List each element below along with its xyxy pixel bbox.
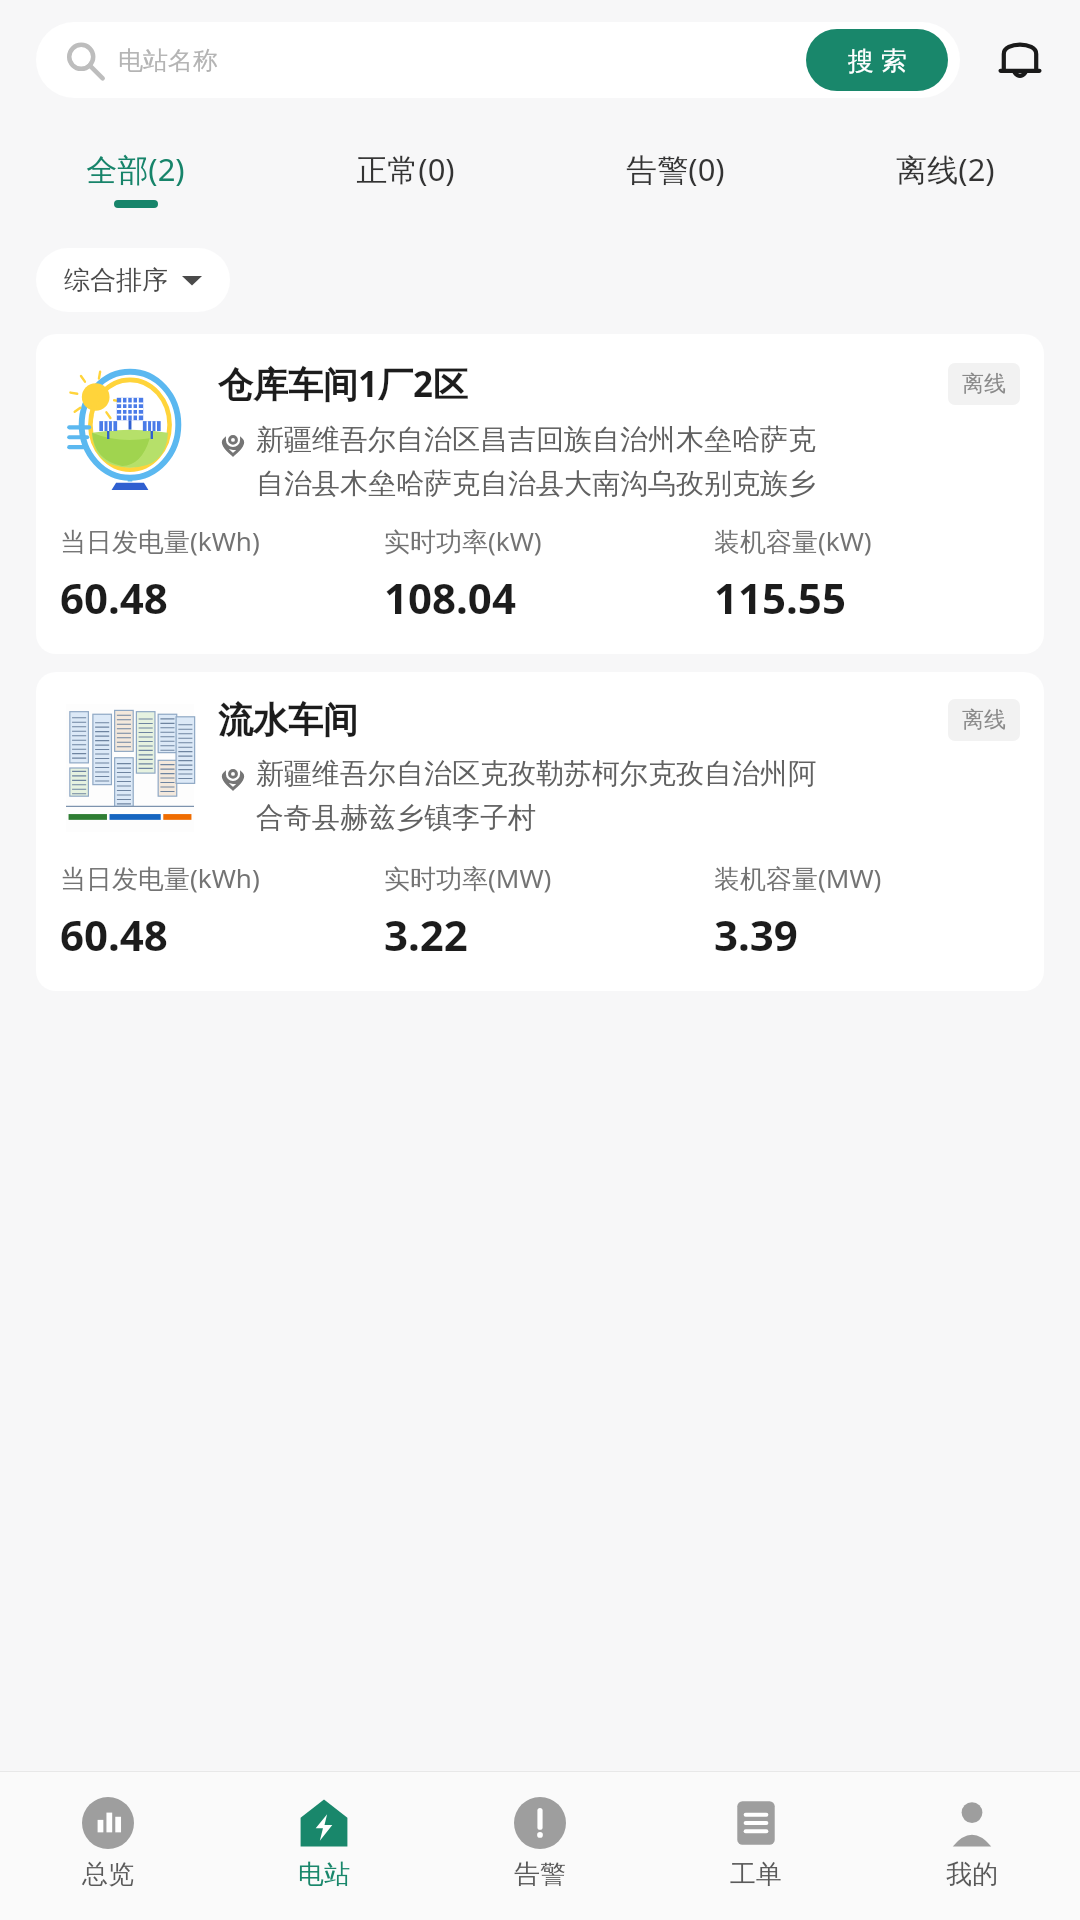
button[interactable]: 全部(2) — [0, 130, 270, 226]
staticText: 当日发电量(kWh) — [60, 523, 260, 559]
staticText: 总览 — [82, 1858, 134, 1891]
staticText: 60.48 — [60, 906, 168, 963]
staticText: 离线 — [962, 706, 1006, 734]
staticText: 实时功率(MW) — [384, 860, 552, 896]
staticText: 实时功率(kW) — [384, 523, 542, 559]
button[interactable]: 综合排序 — [36, 248, 230, 312]
button[interactable]: 电站 — [216, 1772, 432, 1920]
staticText: 离线 — [962, 370, 1006, 398]
staticText: 工单 — [730, 1858, 782, 1891]
button[interactable]: 我的 — [864, 1772, 1080, 1920]
button[interactable]: 离线(2) — [810, 130, 1080, 226]
staticText: 装机容量(MW) — [714, 860, 882, 896]
button[interactable]: 仓库车间1厂2区 — [36, 334, 1044, 654]
staticText: 仓库车间1厂2区 — [218, 360, 469, 408]
staticText: 电站 — [298, 1858, 350, 1891]
button[interactable]: 搜 索 — [806, 29, 948, 91]
button[interactable]: 流水车间 — [36, 672, 1044, 991]
staticText: 我的 — [946, 1858, 998, 1891]
staticText: 流水车间 — [218, 698, 358, 742]
button[interactable]: 电站名称 — [36, 22, 960, 98]
staticText: 新疆维吾尔自治区昌吉回族自治州木垒哈萨克 自治县木垒哈萨克自治县大南沟乌孜别克族… — [256, 422, 816, 501]
staticText: 115.55 — [714, 569, 846, 626]
button[interactable]: 正常(0) — [270, 130, 540, 226]
staticText: 60.48 — [60, 569, 168, 626]
staticText: 3.22 — [384, 906, 468, 963]
staticText: 告警 — [514, 1858, 566, 1891]
button[interactable]: 告警(0) — [540, 130, 810, 226]
staticText: 当日发电量(kWh) — [60, 860, 260, 896]
button[interactable]: Notifications — [982, 22, 1058, 98]
staticText: 告警(0) — [626, 148, 725, 190]
button[interactable]: 告警 — [432, 1772, 648, 1920]
staticText: 新疆维吾尔自治区克孜勒苏柯尔克孜自治州阿 合奇县赫兹乡镇李子村 — [256, 756, 816, 835]
staticText: 装机容量(kW) — [714, 523, 872, 559]
staticText: 108.04 — [384, 569, 516, 626]
staticText: 正常(0) — [356, 148, 455, 190]
staticText: 3.39 — [714, 906, 798, 963]
staticText: 综合排序 — [64, 264, 168, 297]
staticText: 离线(2) — [896, 148, 995, 190]
staticText: 全部(2) — [86, 148, 185, 190]
button[interactable]: 总览 — [0, 1772, 216, 1920]
staticText: 搜 索 — [848, 42, 907, 78]
button[interactable]: 工单 — [648, 1772, 864, 1920]
staticText: 电站名称 — [118, 45, 218, 76]
